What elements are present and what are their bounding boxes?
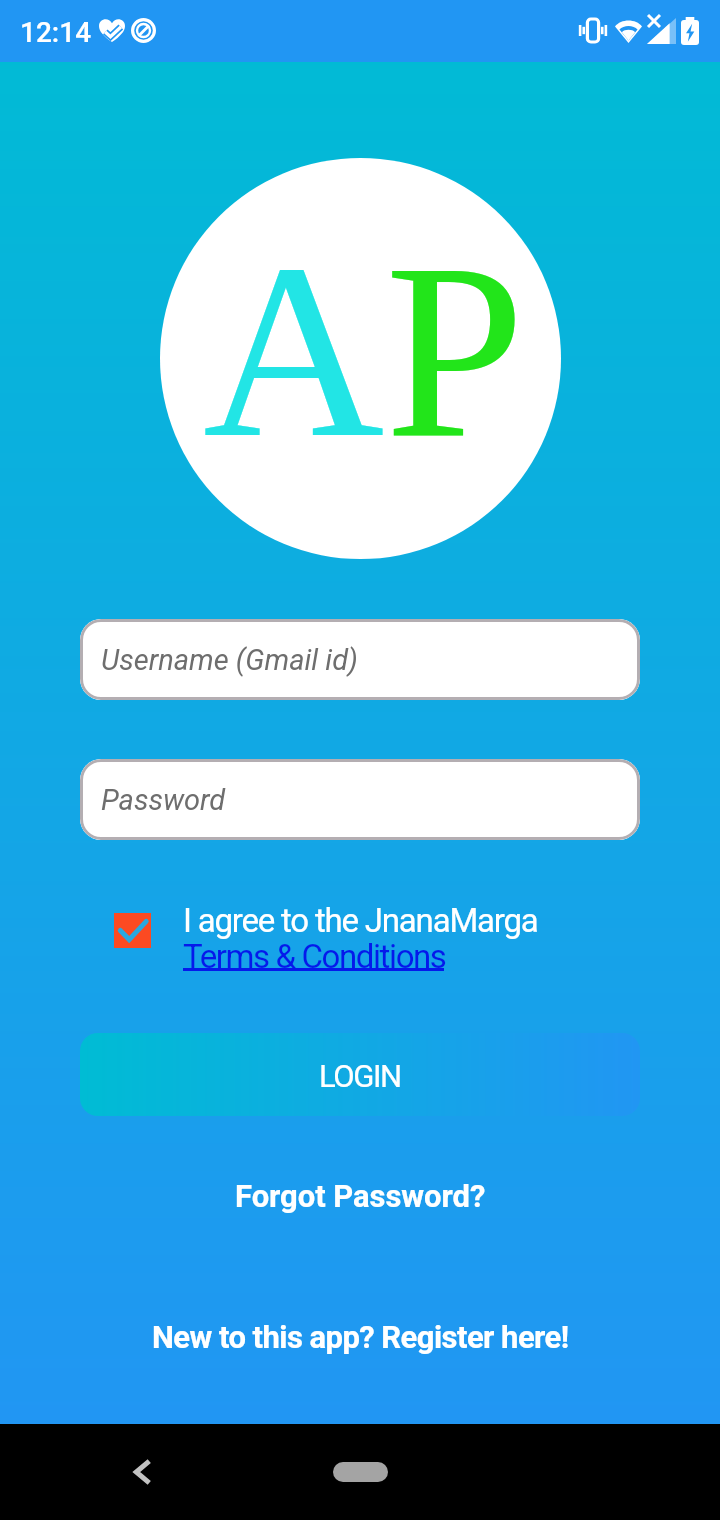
button[interactable]: Agree to terms [114,913,151,948]
staticText: P [385,211,525,489]
button[interactable]: Home [300,1448,420,1496]
button[interactable]: Back [119,1448,167,1496]
button[interactable]: Password [80,759,640,840]
button[interactable]: Forgot Password? [235,1178,486,1214]
staticText: I agree to the JnanaMarga [183,901,538,940]
staticText: LOGIN [319,1058,401,1094]
button[interactable]: LOGIN [80,1033,640,1116]
button[interactable]: New to this app? Register here! [152,1319,569,1355]
staticText: Username (Gmail id) [101,643,358,677]
button[interactable]: Username (Gmail id) [80,619,640,700]
staticText: 12:14 [20,16,92,49]
staticText: A [203,211,385,489]
button[interactable]: Terms & Conditions [183,937,446,976]
staticText: Password [101,783,226,817]
staticText: Terms & Conditions [183,937,446,976]
